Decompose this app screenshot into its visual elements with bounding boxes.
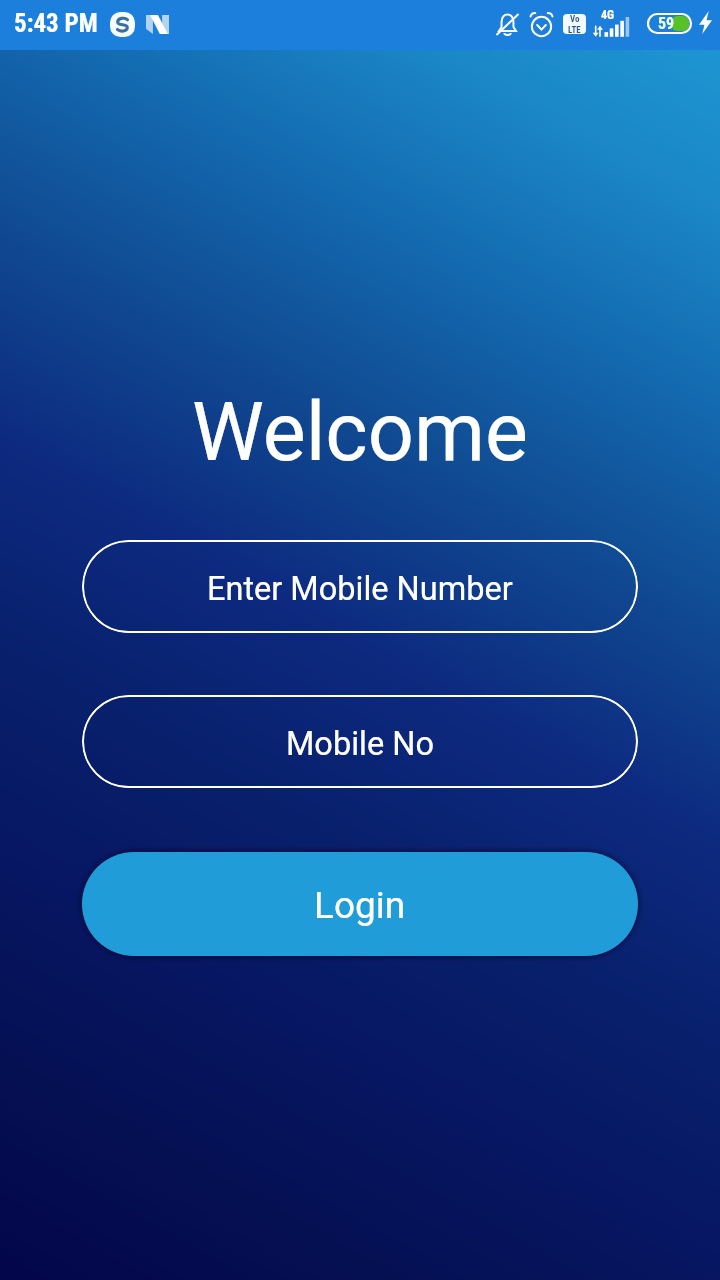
button[interactable]: Mobile No bbox=[82, 695, 638, 788]
staticText: 59 bbox=[658, 14, 675, 33]
staticText: Mobile No bbox=[286, 725, 434, 763]
other: Skype bbox=[110, 12, 135, 37]
staticText: Login bbox=[314, 884, 406, 927]
other: Mobile signal 4G bbox=[592, 8, 640, 44]
other: VoLTE bbox=[563, 14, 586, 34]
staticText: Welcome bbox=[0, 385, 720, 480]
staticText: Enter Mobile Number bbox=[207, 570, 513, 608]
staticText: LTE bbox=[568, 25, 581, 34]
other: Alarm bbox=[530, 12, 553, 37]
other: Android beam bbox=[146, 15, 169, 34]
other: Charging bbox=[699, 11, 712, 34]
button[interactable]: Login bbox=[82, 852, 638, 956]
button[interactable]: Enter Mobile Number bbox=[82, 540, 638, 633]
staticText: 4G bbox=[601, 8, 615, 22]
staticText: Vo bbox=[570, 14, 580, 25]
other: Silent mode bbox=[496, 12, 519, 37]
other: Battery 59 percent bbox=[647, 13, 692, 34]
staticText: 5:43 PM bbox=[14, 9, 98, 38]
